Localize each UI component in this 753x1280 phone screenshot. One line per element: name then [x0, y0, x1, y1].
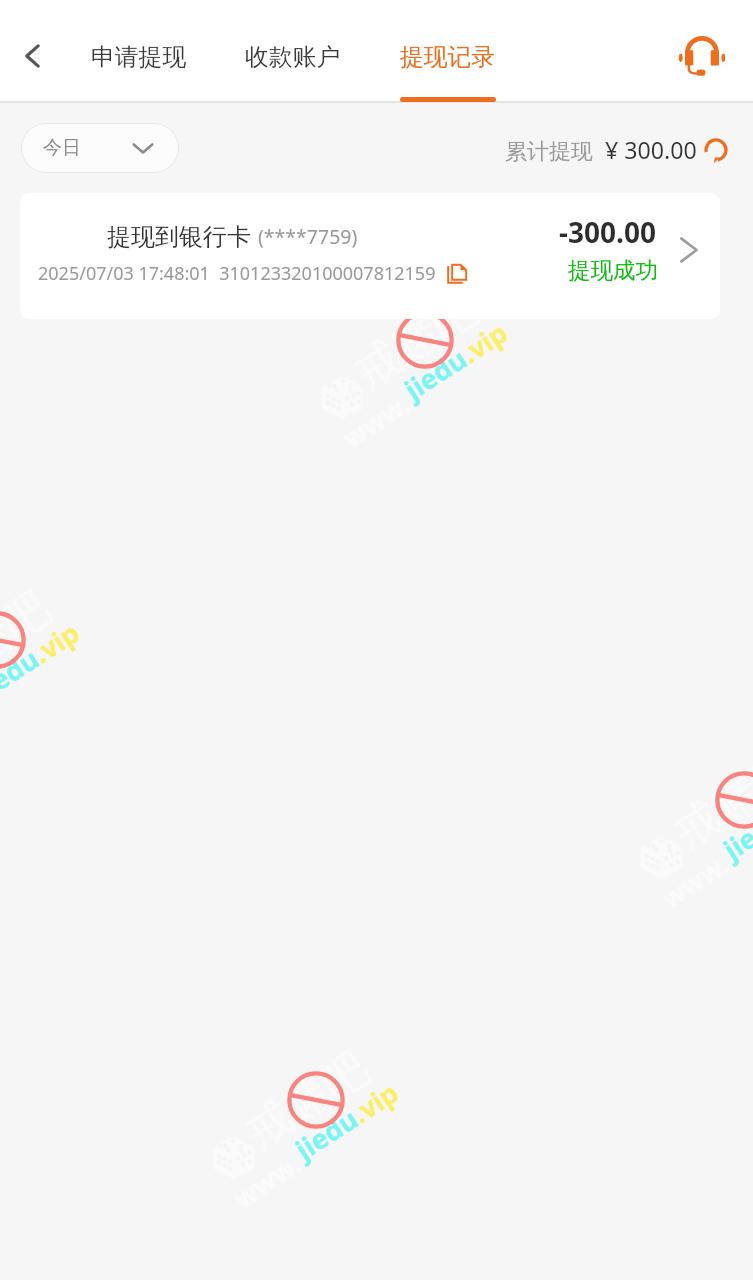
staticText: 戒赌吧	[344, 280, 489, 401]
staticText: .vip	[453, 313, 515, 371]
staticText: 提现成功	[568, 256, 658, 284]
staticText: www.	[226, 1146, 307, 1215]
staticText: jiedu	[716, 800, 753, 868]
button[interactable]: Refresh	[703, 137, 729, 163]
button[interactable]: 提现到银行卡	[20, 193, 720, 319]
staticText: 戒赌吧	[663, 740, 753, 861]
staticText: jiedu	[397, 340, 474, 408]
button[interactable]: 提现记录	[393, 20, 503, 100]
button[interactable]: Back	[9, 32, 57, 80]
staticText: (****7759)	[258, 223, 358, 250]
staticText: 2025/07/03 17:48:01 31012332010000781215…	[38, 261, 436, 286]
staticText: ¥ 300.00	[605, 134, 697, 166]
staticText: 提现到银行卡	[107, 222, 251, 252]
staticText: 收款账户	[245, 42, 341, 72]
staticText: www.	[335, 386, 416, 455]
staticText: 戒赌吧	[235, 1040, 380, 1161]
staticText: 今日	[43, 136, 81, 160]
staticText: .vip	[25, 613, 87, 671]
staticText: www.	[654, 846, 735, 915]
staticText: 戒赌吧	[0, 580, 61, 701]
staticText: jiedu	[0, 640, 46, 708]
button[interactable]: 今日	[22, 124, 178, 172]
staticText: -300.00	[559, 213, 656, 251]
staticText: .vip	[344, 1073, 406, 1131]
button[interactable]: 收款账户	[238, 20, 348, 100]
staticText: 申请提现	[91, 42, 187, 72]
staticText: 累计提现	[505, 138, 593, 166]
staticText: jiedu	[288, 1100, 365, 1168]
staticText: 提现记录	[400, 42, 496, 72]
button[interactable]: 申请提现	[84, 20, 194, 100]
button[interactable]: Customer service	[675, 33, 729, 87]
button[interactable]: Copy	[446, 263, 468, 285]
